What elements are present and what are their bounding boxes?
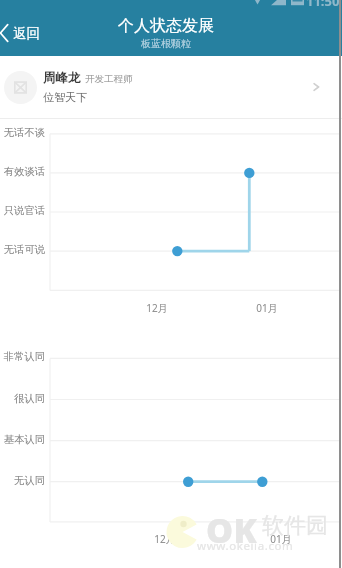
staticText: 无话不谈 [0, 126, 45, 139]
staticText: 返回 [13, 25, 40, 42]
staticText: 周峰龙 [43, 70, 81, 86]
other: Details [304, 75, 328, 99]
staticText: 很认同 [0, 392, 45, 405]
staticText: 基本认同 [0, 433, 45, 446]
staticText: 位智天下 [43, 90, 87, 104]
staticText: 无话可说 [0, 243, 45, 256]
staticText: 12月 [137, 301, 177, 315]
staticText: 无认同 [0, 474, 45, 487]
staticText: www.okeiia.com [197, 538, 294, 554]
button[interactable]: 返回 [0, 22, 40, 44]
staticText: 只说官话 [0, 204, 45, 217]
staticText: 有效谈话 [0, 165, 45, 178]
button[interactable]: 周峰龙 [0, 56, 342, 118]
staticText: 12月 [145, 532, 185, 546]
staticText: 01月 [261, 532, 301, 546]
staticText: 个人状态发展 [118, 16, 214, 36]
staticText: 开发工程师 [85, 73, 133, 85]
staticText: 01月 [247, 301, 287, 315]
staticText: 11:50 [306, 0, 340, 10]
staticText: 软件园 [262, 512, 328, 540]
staticText: 非常认同 [0, 350, 45, 363]
staticText: OK [206, 507, 258, 553]
staticText: 板蓝根颗粒 [141, 37, 191, 50]
